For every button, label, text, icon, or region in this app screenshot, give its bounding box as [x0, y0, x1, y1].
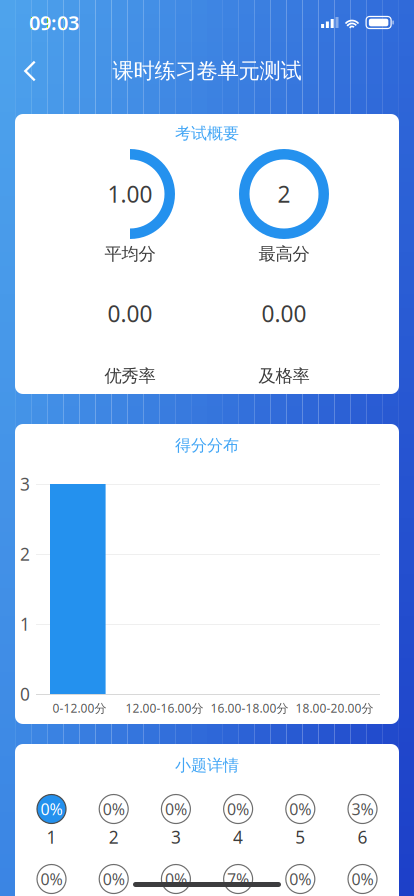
staticText: 小题详情	[175, 756, 239, 775]
staticText: 2	[109, 825, 119, 848]
staticText: 3	[171, 825, 181, 848]
staticText: 0%	[289, 868, 311, 890]
button[interactable]: 0%	[269, 794, 331, 845]
button[interactable]: Back	[0, 49, 52, 93]
staticText: 0%	[103, 798, 125, 820]
staticText: 0.00	[261, 298, 306, 328]
staticText: 0%	[227, 798, 249, 820]
staticText: 2	[277, 179, 290, 209]
staticText: 0%	[289, 798, 311, 820]
staticText: 09:03	[29, 9, 79, 36]
staticText: 课时练习卷单元测试	[112, 58, 301, 84]
staticText: 0%	[40, 868, 62, 890]
staticText: 3%	[351, 798, 373, 820]
staticText: 考试概要	[175, 124, 239, 143]
staticText: 5	[295, 825, 305, 848]
button[interactable]: 0%	[83, 864, 145, 896]
staticText: 7%	[227, 868, 249, 890]
staticText: 0%	[351, 868, 373, 890]
staticText: 3	[20, 472, 30, 495]
staticText: 优秀率	[104, 365, 155, 387]
staticText: 1	[20, 612, 30, 635]
staticText: 0%	[40, 798, 62, 820]
staticText: 及格率	[258, 365, 309, 387]
staticText: 1	[46, 825, 56, 848]
staticText: 2	[20, 542, 30, 565]
staticText: 0.00	[107, 298, 152, 328]
staticText: 6	[357, 825, 367, 848]
staticText: 4	[233, 825, 243, 848]
staticText: 0%	[103, 868, 125, 890]
button[interactable]: 0%	[83, 794, 145, 845]
button[interactable]: 0%	[145, 864, 207, 896]
staticText: 12.00-16.00分	[125, 700, 203, 716]
button[interactable]: 0%	[269, 864, 331, 896]
staticText: 得分分布	[175, 436, 239, 455]
button[interactable]: 0%	[145, 794, 207, 845]
button[interactable]: 7%	[207, 864, 269, 896]
staticText: 18.00-20.00分	[295, 700, 373, 716]
staticText: 0%	[165, 868, 187, 890]
button[interactable]: 3%	[331, 794, 394, 845]
staticText: 0%	[165, 798, 187, 820]
button[interactable]: 0%	[331, 864, 394, 896]
staticText: 16.00-18.00分	[210, 700, 288, 716]
staticText: 0	[20, 682, 30, 705]
staticText: 1.00	[107, 179, 152, 209]
staticText: 最高分	[258, 243, 309, 265]
staticText: 平均分	[104, 243, 155, 265]
button[interactable]: 0%	[20, 864, 83, 896]
button[interactable]: 0%	[20, 794, 83, 845]
staticText: 0-12.00分	[52, 700, 106, 716]
button[interactable]: 0%	[207, 794, 269, 845]
